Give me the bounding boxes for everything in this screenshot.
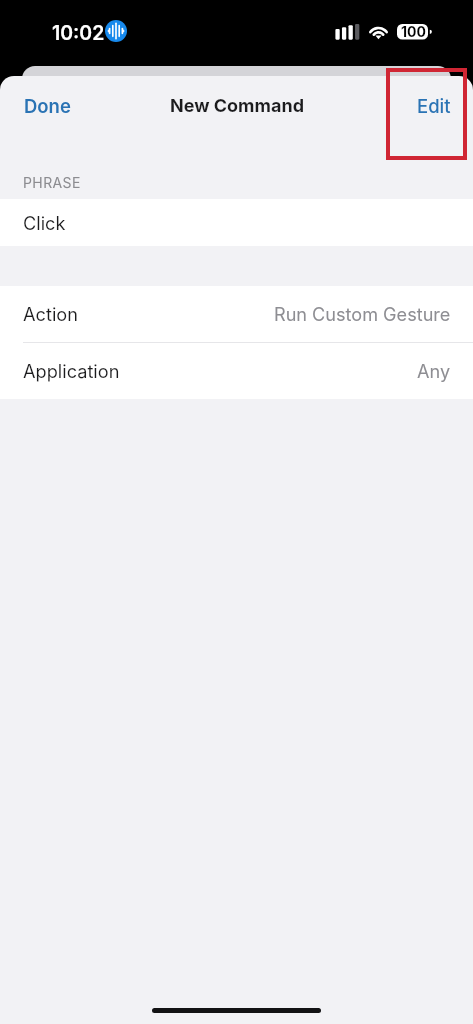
staticText: Done xyxy=(24,95,71,117)
button[interactable]: Click xyxy=(0,199,473,246)
button[interactable]: Done xyxy=(0,85,91,127)
staticText: New Command xyxy=(170,95,304,117)
staticText: Run Custom Gesture xyxy=(274,303,451,325)
staticText: Any xyxy=(417,360,451,382)
button[interactable]: Edit xyxy=(397,85,473,127)
staticText: Application xyxy=(23,360,120,382)
button[interactable]: Application xyxy=(0,343,473,399)
button[interactable]: Action xyxy=(0,286,473,342)
other: Voice Control active xyxy=(105,20,127,42)
other: Wi-Fi connected xyxy=(367,22,390,40)
staticText: Click xyxy=(23,212,66,234)
staticText: PHRASE xyxy=(23,174,81,191)
staticText: 100 xyxy=(401,23,426,40)
staticText: Action xyxy=(23,303,78,325)
other: Cellular signal xyxy=(335,23,361,40)
staticText: 10:02 xyxy=(52,21,105,45)
staticText: Edit xyxy=(417,95,451,117)
other: Battery 100 percent xyxy=(397,23,433,40)
